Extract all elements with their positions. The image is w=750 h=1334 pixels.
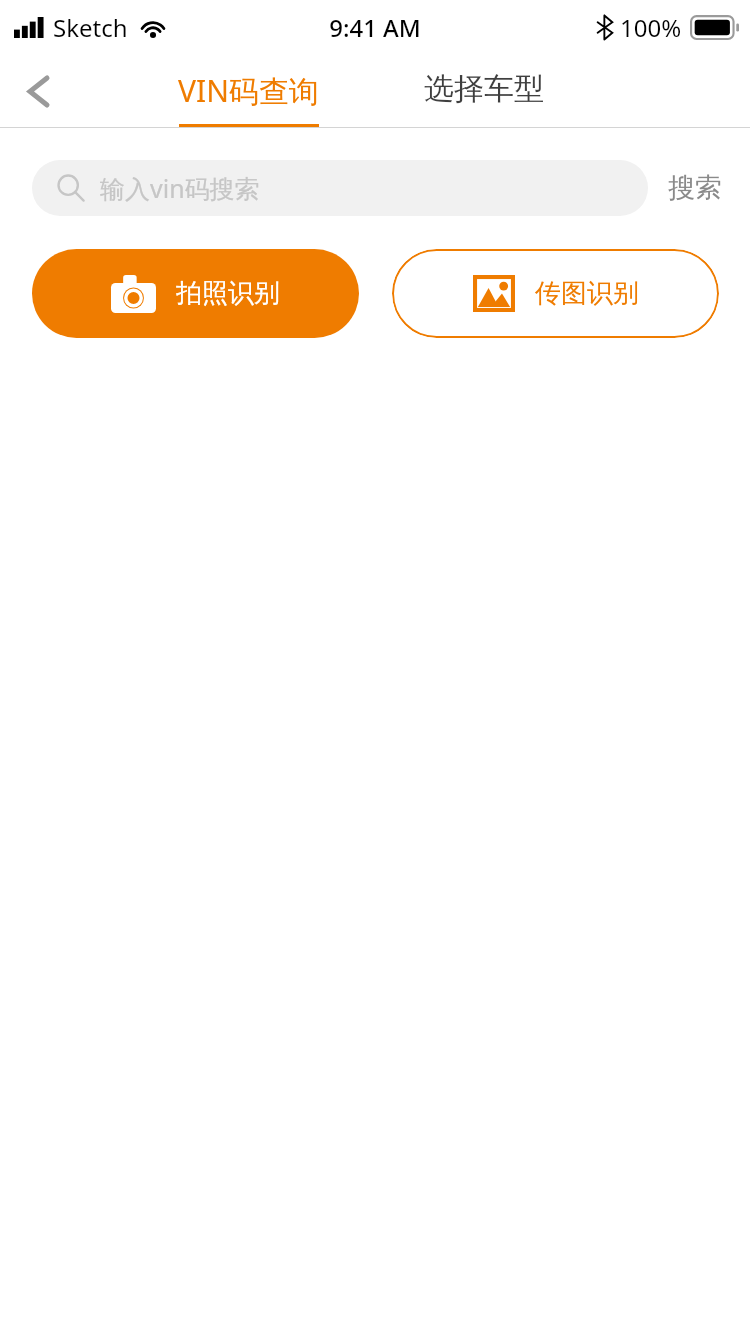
staticText: 9:41 AM (329, 11, 421, 44)
button[interactable]: 输入vin码搜索 (32, 160, 648, 216)
button[interactable]: 拍照识别 (32, 249, 359, 338)
button[interactable]: VIN码查询 (170, 54, 327, 128)
staticText: Sketch (53, 11, 128, 44)
staticText: 传图识别 (535, 277, 639, 310)
staticText: 选择车型 (424, 70, 544, 108)
staticText: 拍照识别 (176, 277, 280, 310)
button[interactable]: 搜索 (648, 161, 722, 215)
button[interactable]: 传图识别 (392, 249, 719, 338)
staticText: 搜索 (668, 171, 722, 205)
button[interactable]: Back (0, 54, 76, 128)
staticText: 输入vin码搜索 (100, 171, 260, 205)
button[interactable]: 选择车型 (416, 70, 552, 108)
staticText: 100% (620, 11, 682, 44)
staticText: VIN码查询 (178, 70, 319, 111)
